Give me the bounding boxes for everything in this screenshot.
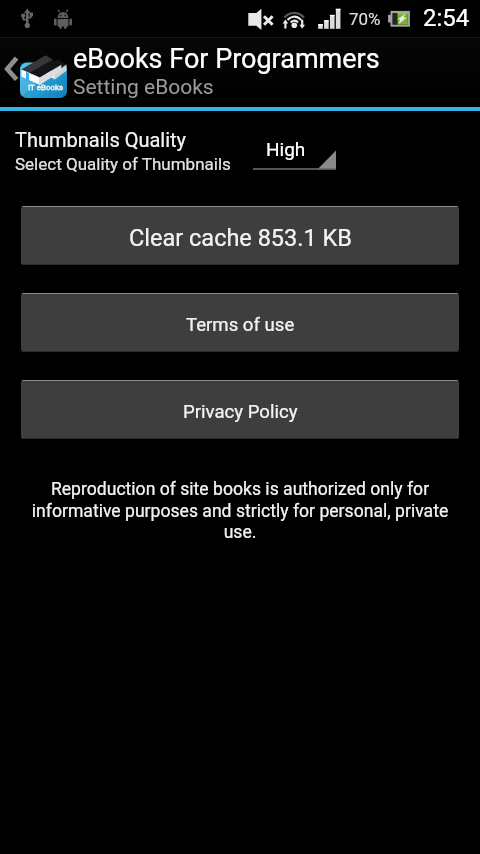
staticText: Privacy Policy (183, 401, 298, 423)
staticText: Clear cache 853.1 KB (129, 224, 352, 252)
staticText: Reproduction of site books is authorized… (18, 479, 462, 542)
staticText: IT eBooks (28, 83, 64, 92)
staticText: Terms of use (186, 314, 295, 336)
staticText: High (266, 138, 306, 160)
button[interactable]: Navigate up (0, 38, 69, 107)
button[interactable]: Terms of use (21, 293, 459, 352)
staticText: Thumbnails Quality (15, 128, 187, 151)
button[interactable]: Thumbnails quality: High (253, 136, 336, 170)
button[interactable]: Clear cache 853.1 KB (21, 206, 459, 265)
staticText: 2:54 (423, 4, 470, 32)
staticText: eBooks For Programmers (73, 43, 380, 75)
staticText: 70% (349, 9, 381, 29)
staticText: Setting eBooks (73, 75, 214, 100)
button[interactable]: Privacy Policy (21, 380, 459, 439)
staticText: Select Quality of Thumbnails (15, 154, 231, 174)
